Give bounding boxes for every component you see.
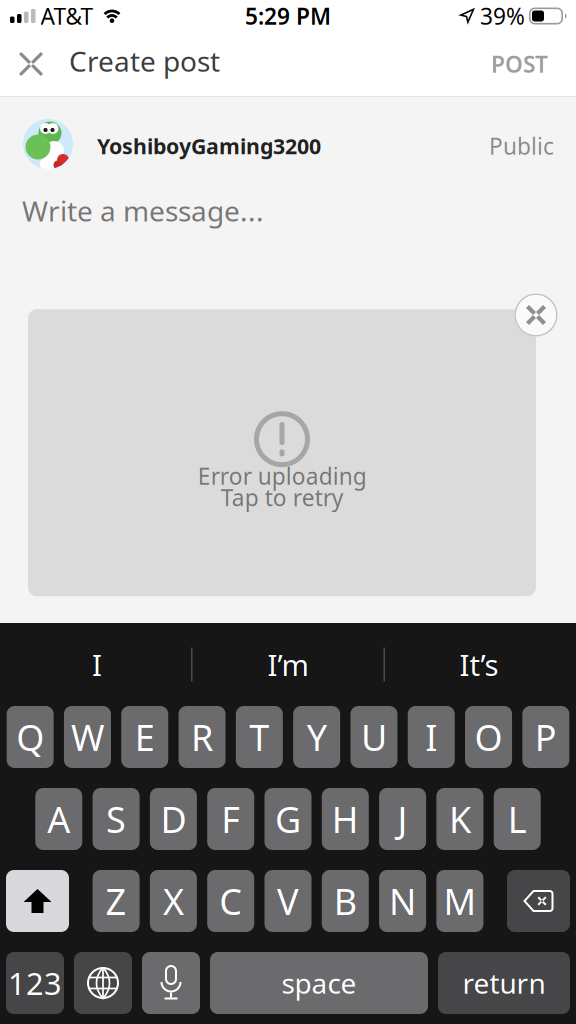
button[interactable]: I bbox=[2, 623, 192, 706]
button[interactable]: Q bbox=[7, 706, 54, 768]
staticText: J bbox=[398, 795, 408, 843]
staticText: 5:29 PM bbox=[245, 1, 331, 31]
staticText: 123 bbox=[8, 963, 62, 1003]
staticText: AT&T bbox=[40, 1, 93, 31]
staticText: D bbox=[160, 795, 186, 843]
button[interactable]: P bbox=[522, 706, 569, 768]
button[interactable]: Close bbox=[0, 32, 69, 96]
button[interactable]: E bbox=[121, 706, 168, 768]
button[interactable]: space bbox=[210, 952, 428, 1014]
staticText: B bbox=[334, 877, 357, 925]
staticText: return bbox=[462, 964, 545, 1002]
staticText: YoshiboyGaming3200 bbox=[97, 132, 321, 160]
staticText: M bbox=[443, 877, 476, 925]
button[interactable]: T bbox=[236, 706, 283, 768]
button[interactable]: H bbox=[322, 788, 369, 850]
button[interactable]: A bbox=[35, 788, 82, 850]
button[interactable]: return bbox=[438, 952, 570, 1014]
button[interactable]: Delete bbox=[507, 870, 570, 932]
button[interactable]: S bbox=[93, 788, 140, 850]
button[interactable]: J bbox=[379, 788, 426, 850]
staticText: K bbox=[449, 795, 471, 843]
staticText: POST bbox=[491, 49, 548, 79]
button[interactable]: Remove image bbox=[514, 293, 557, 336]
staticText: U bbox=[361, 713, 387, 761]
staticText: V bbox=[277, 877, 299, 925]
staticText: O bbox=[475, 713, 503, 761]
button[interactable]: C bbox=[207, 870, 254, 932]
staticText: I bbox=[92, 645, 102, 684]
button[interactable]: Y bbox=[293, 706, 340, 768]
button[interactable]: Next keyboard bbox=[74, 952, 132, 1014]
button[interactable]: POST bbox=[491, 32, 576, 96]
button[interactable]: Tap to retry bbox=[28, 309, 536, 596]
staticText: 39% bbox=[480, 1, 525, 31]
staticText: X bbox=[163, 877, 184, 925]
staticText: Create post bbox=[69, 42, 220, 80]
button[interactable]: 123 bbox=[6, 952, 64, 1014]
staticText: L bbox=[508, 795, 527, 843]
button[interactable]: O bbox=[465, 706, 512, 768]
button[interactable]: I’m bbox=[192, 623, 384, 706]
button[interactable]: D bbox=[150, 788, 197, 850]
button[interactable]: G bbox=[264, 788, 311, 850]
button[interactable]: N bbox=[379, 870, 426, 932]
button[interactable]: V bbox=[264, 870, 311, 932]
staticText: Error uploading Tap to retry bbox=[197, 461, 366, 513]
button[interactable]: B bbox=[322, 870, 369, 932]
staticText: R bbox=[191, 713, 213, 761]
button[interactable]: L bbox=[494, 788, 541, 850]
button[interactable]: X bbox=[150, 870, 197, 932]
staticText: F bbox=[221, 795, 240, 843]
staticText: T bbox=[249, 713, 269, 761]
button[interactable]: U bbox=[350, 706, 397, 768]
button[interactable]: F bbox=[207, 788, 254, 850]
button[interactable]: Z bbox=[93, 870, 140, 932]
button[interactable]: I bbox=[408, 706, 455, 768]
staticText: H bbox=[332, 795, 359, 843]
staticText: It’s bbox=[459, 645, 498, 684]
staticText: space bbox=[281, 964, 356, 1002]
button[interactable]: M bbox=[436, 870, 483, 932]
button[interactable]: Dictate bbox=[142, 952, 200, 1014]
staticText: Z bbox=[106, 877, 127, 925]
button[interactable]: W bbox=[64, 706, 111, 768]
staticText: W bbox=[71, 713, 104, 761]
staticText: I’m bbox=[267, 645, 308, 684]
button[interactable]: R bbox=[178, 706, 225, 768]
button[interactable]: It’s bbox=[384, 623, 574, 706]
staticText: S bbox=[106, 795, 126, 843]
staticText: Q bbox=[16, 713, 44, 761]
button[interactable]: Shift bbox=[6, 870, 69, 932]
staticText: G bbox=[275, 795, 301, 843]
staticText: I bbox=[425, 713, 437, 761]
staticText: Public bbox=[489, 131, 554, 161]
staticText: E bbox=[135, 713, 155, 761]
staticText: Y bbox=[307, 713, 327, 761]
staticText: A bbox=[47, 795, 70, 843]
staticText: N bbox=[389, 877, 416, 925]
staticText: P bbox=[535, 713, 557, 761]
staticText: C bbox=[219, 877, 242, 925]
button[interactable]: K bbox=[436, 788, 483, 850]
staticText: Write a message... bbox=[22, 192, 264, 229]
